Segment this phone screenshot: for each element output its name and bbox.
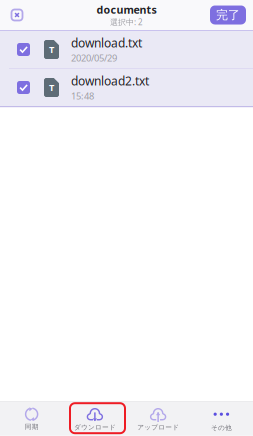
staticText: ダウンロード [74,423,116,431]
staticText: その他 [211,424,232,432]
staticText: アップロード [137,423,179,431]
staticText: documents [96,3,156,17]
staticText: 完了 [216,8,240,22]
button[interactable]: 同期 [0,402,63,436]
staticText: 同期 [25,423,39,431]
staticText: download.txt [71,35,142,51]
button[interactable]: 完了 [210,5,246,24]
button[interactable]: Close [0,0,34,30]
staticText: T [49,81,54,94]
staticText: 15:48 [71,90,94,102]
button[interactable]: T [0,31,253,68]
button[interactable]: T [0,69,253,106]
staticText: download2.txt [71,73,149,89]
button[interactable]: ダウンロード [63,402,126,436]
staticText: T [49,43,54,56]
button[interactable]: アップロード [126,402,190,436]
staticText: 選択中: 2 [110,17,143,27]
staticText: 2020/05/29 [71,52,117,64]
button[interactable]: その他 [190,402,253,436]
